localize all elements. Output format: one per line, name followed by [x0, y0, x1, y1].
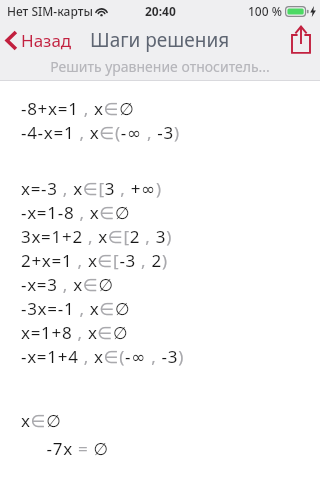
button[interactable]: Поделиться [282, 24, 320, 56]
staticText: 100 % [248, 3, 282, 19]
staticText: x∈∅ [21, 409, 62, 432]
staticText: -x=1+4 , x∈(-∞ , -3) [21, 345, 184, 368]
staticText: -3x=-1 , x∈∅ [21, 297, 131, 320]
staticText: 3x=1+2 , x∈[2 , 3) [21, 225, 172, 248]
staticText: x=-3 , x∈[3 , +∞) [21, 177, 162, 200]
staticText: Назад [21, 29, 72, 52]
staticText: Нет SIM-карты [7, 3, 93, 19]
staticText: -x=3 , x∈∅ [21, 273, 114, 296]
staticText: 20:40 [145, 3, 176, 19]
staticText: -4-x=1 , x∈(-∞ , -3) [21, 121, 180, 144]
staticText: 2+x=1 , x∈[-3 , 2) [21, 249, 168, 272]
staticText: Решить уравнение относитель... [0, 57, 320, 76]
staticText: Шаги решения [90, 27, 230, 53]
staticText: x=1+8 , x∈∅ [21, 321, 129, 344]
staticText: -7x = ∅ [21, 437, 110, 460]
staticText: -8+x=1 , x∈∅ [21, 97, 135, 120]
staticText: -x=1-8 , x∈∅ [21, 201, 131, 224]
button[interactable]: Назад [0, 24, 80, 57]
